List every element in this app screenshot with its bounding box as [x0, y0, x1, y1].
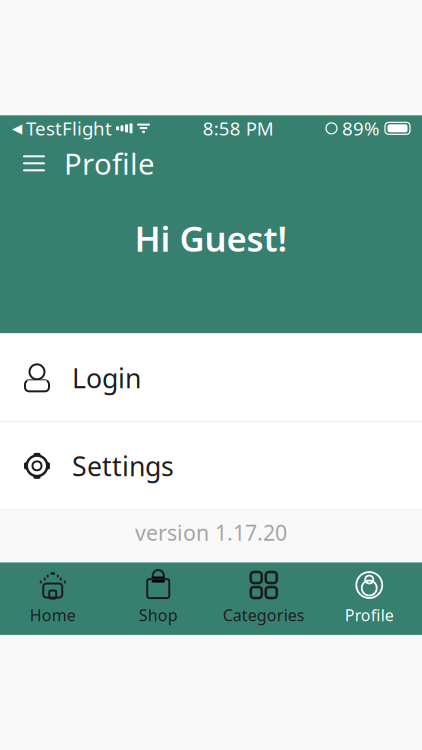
staticText: ◀: [12, 121, 22, 136]
staticText: Profile: [345, 604, 394, 626]
button[interactable]: Settings: [0, 422, 422, 509]
staticText: TestFlight: [26, 116, 112, 141]
staticText: 89%: [342, 116, 380, 141]
staticText: version 1.17.20: [135, 518, 287, 547]
button[interactable]: Menu: [18, 146, 50, 180]
button[interactable]: Home: [0, 563, 105, 635]
staticText: Profile: [64, 144, 155, 183]
button[interactable]: Categories: [211, 563, 316, 635]
staticText: Hi Guest!: [134, 215, 287, 261]
staticText: Home: [30, 604, 76, 626]
staticText: Shop: [139, 604, 178, 626]
staticText: Login: [72, 360, 141, 395]
button[interactable]: Shop: [105, 563, 211, 635]
staticText: Categories: [223, 604, 305, 626]
button[interactable]: Login: [0, 334, 422, 421]
staticText: Settings: [72, 448, 174, 483]
button[interactable]: Profile: [316, 563, 422, 635]
staticText: 8:58 PM: [203, 116, 274, 141]
